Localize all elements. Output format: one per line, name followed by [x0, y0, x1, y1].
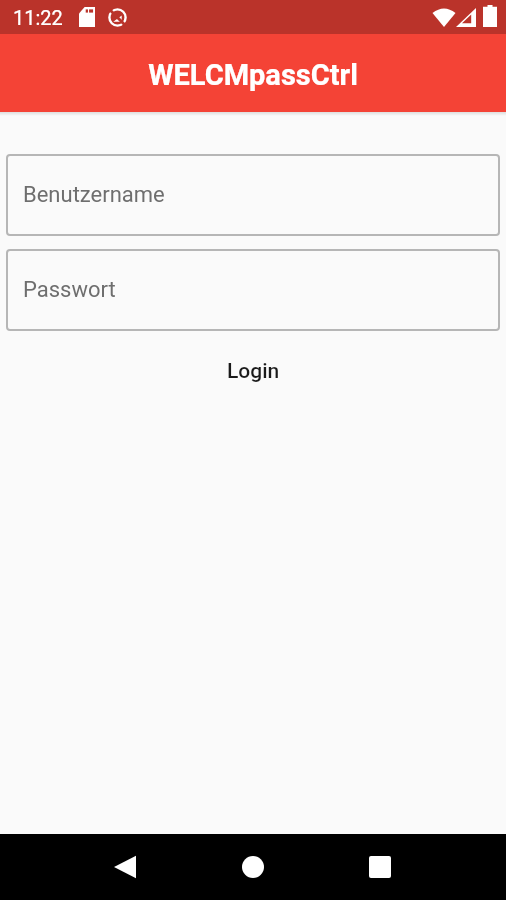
- other: Rotation locked: [108, 8, 127, 27]
- staticText: Passwort: [23, 277, 116, 303]
- staticText: Login: [227, 359, 280, 384]
- other: Mobile signal: [456, 8, 476, 27]
- other: Battery: [483, 5, 497, 27]
- button[interactable]: Back: [101, 843, 149, 891]
- button[interactable]: Recent apps: [356, 843, 404, 891]
- button[interactable]: Home: [229, 843, 277, 891]
- other: Wi-Fi: [432, 7, 456, 27]
- staticText: Benutzername: [23, 182, 165, 208]
- staticText: WELCMpassCtrl: [148, 58, 358, 92]
- other: Storage: [79, 7, 95, 27]
- button[interactable]: Passwort: [6, 249, 500, 331]
- button[interactable]: Benutzername: [6, 154, 500, 236]
- button[interactable]: Login: [0, 356, 506, 386]
- staticText: 11:22: [13, 6, 63, 29]
